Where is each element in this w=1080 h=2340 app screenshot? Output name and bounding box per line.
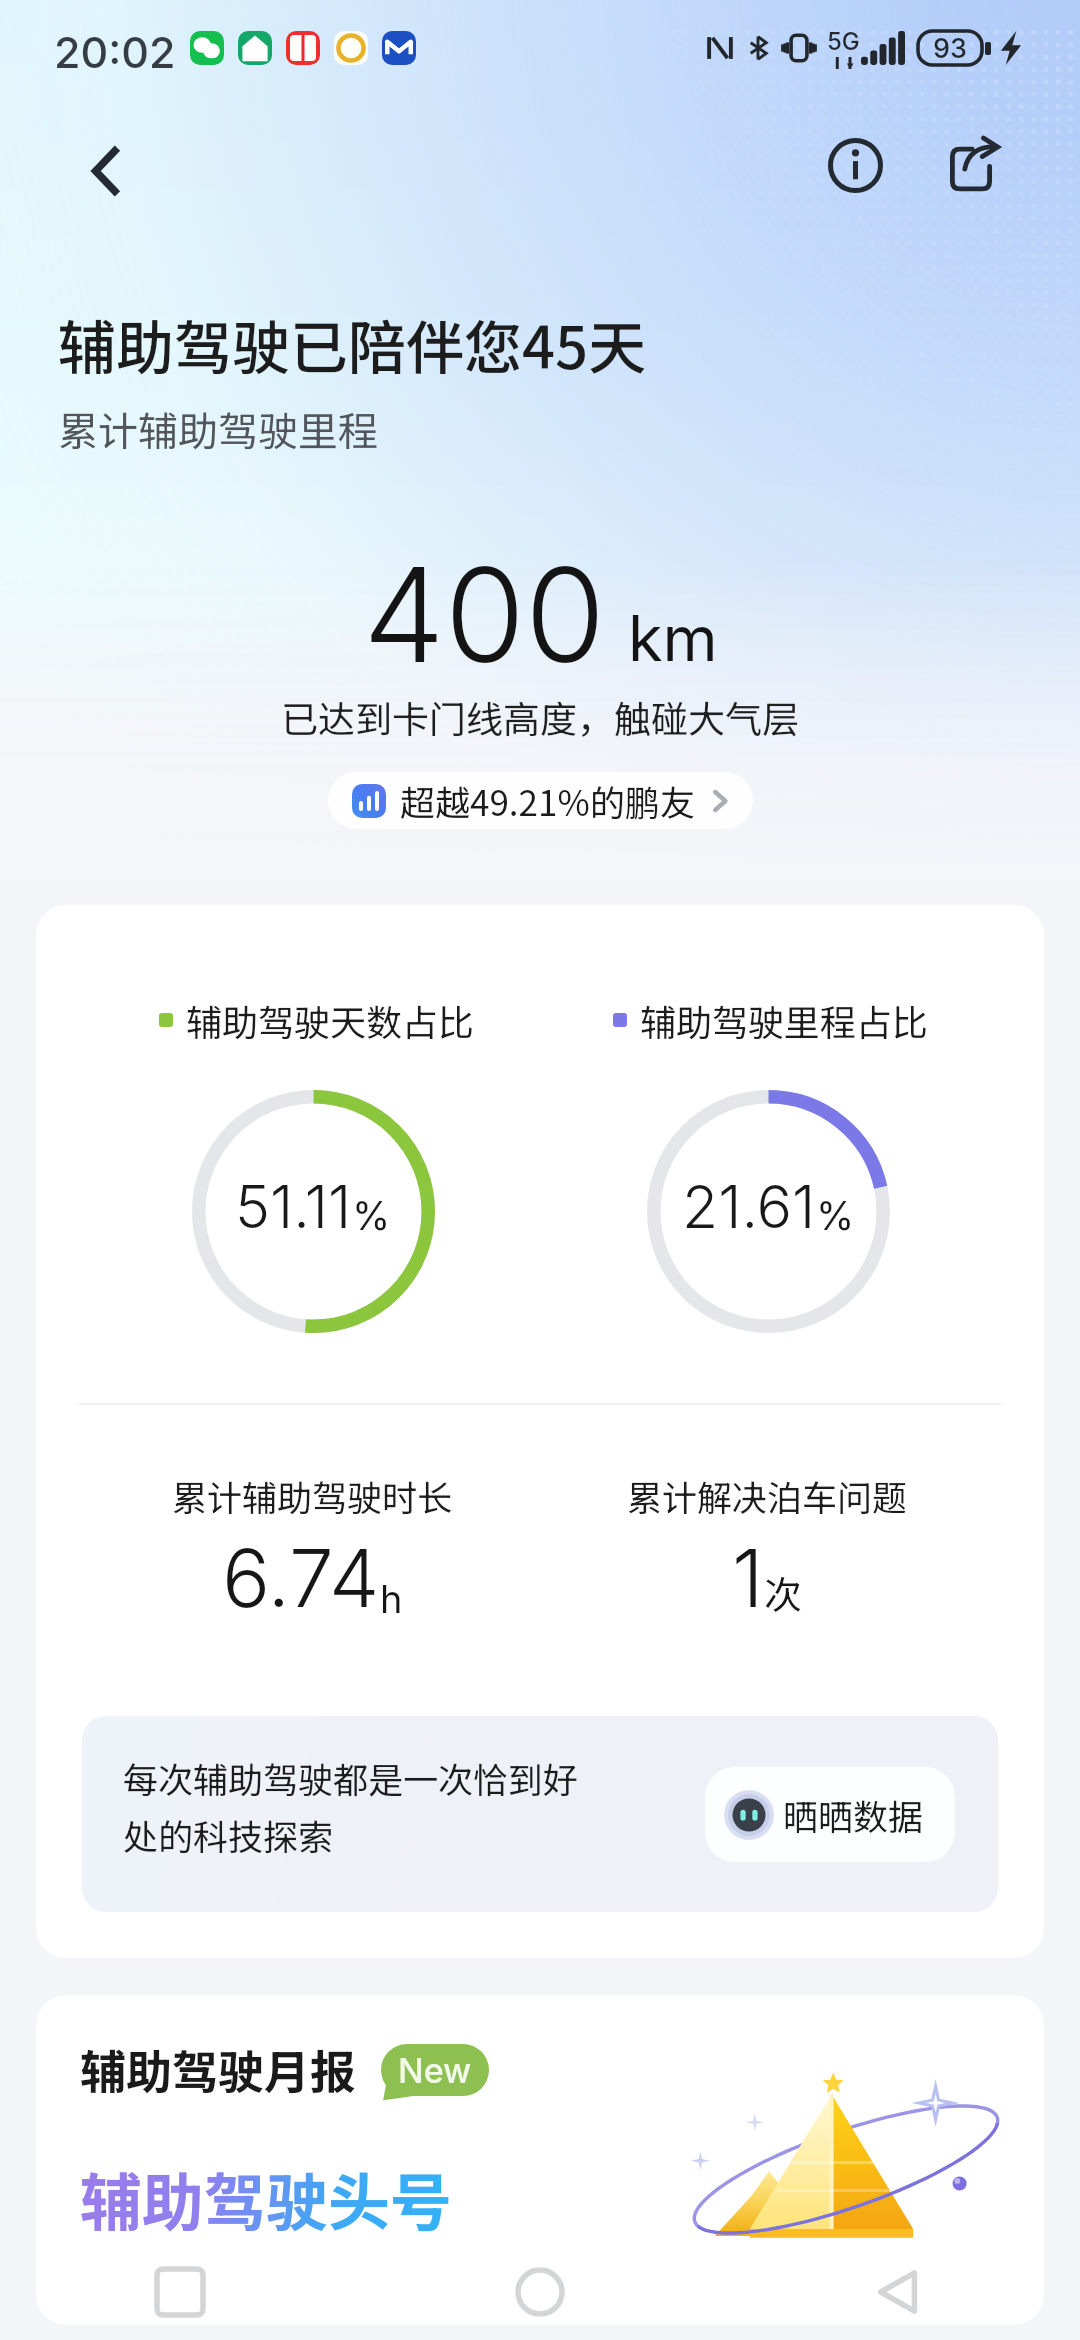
staticText: 5G: [827, 27, 860, 56]
staticText: 累计解决泊车问题: [627, 1470, 908, 1521]
staticText: 已达到卡门线高度，触碰大气层: [281, 690, 799, 744]
staticText: 辅助驾驶天数占比: [186, 994, 475, 1046]
button[interactable]: 晒晒数据: [705, 1767, 955, 1862]
staticText: 93: [933, 32, 967, 65]
staticText: 累计辅助驾驶时长: [172, 1470, 453, 1521]
staticText: 晒晒数据: [783, 1789, 924, 1840]
staticText: 累计辅助驾驶里程: [58, 400, 378, 458]
staticText: km: [628, 600, 718, 676]
staticText: 辅助驾驶头号: [80, 2153, 453, 2243]
button[interactable]: Info: [816, 126, 894, 204]
staticText: 400: [363, 536, 606, 693]
staticText: 51.11: [235, 1171, 352, 1242]
button[interactable]: Share: [932, 130, 1010, 208]
staticText: 辅助驾驶里程占比: [640, 994, 929, 1046]
staticText: 超越49.21%的鹏友: [400, 775, 695, 826]
staticText: %: [352, 1192, 391, 1239]
staticText: 每次辅助驾驶都是一次恰到好 处的科技探索: [123, 1752, 579, 1861]
staticText: 6.74: [222, 1529, 380, 1626]
button[interactable]: 辅助驾驶月报: [36, 1995, 1044, 2325]
staticText: New: [398, 2050, 472, 2091]
staticText: 辅助驾驶月报: [80, 2036, 356, 2103]
staticText: 1: [732, 1529, 764, 1626]
button[interactable]: Back: [720, 2244, 1080, 2340]
button[interactable]: Home: [360, 2244, 720, 2340]
button[interactable]: Recents: [0, 2244, 360, 2340]
staticText: 辅助驾驶已陪伴您45天: [58, 302, 647, 386]
button[interactable]: 超越49.21%的鹏友: [328, 772, 753, 829]
staticText: 次: [764, 1565, 803, 1620]
staticText: h: [380, 1576, 403, 1622]
staticText: 21.61: [682, 1171, 816, 1242]
button[interactable]: Back: [66, 131, 146, 211]
staticText: 20:02: [54, 26, 176, 78]
staticText: %: [816, 1192, 855, 1239]
